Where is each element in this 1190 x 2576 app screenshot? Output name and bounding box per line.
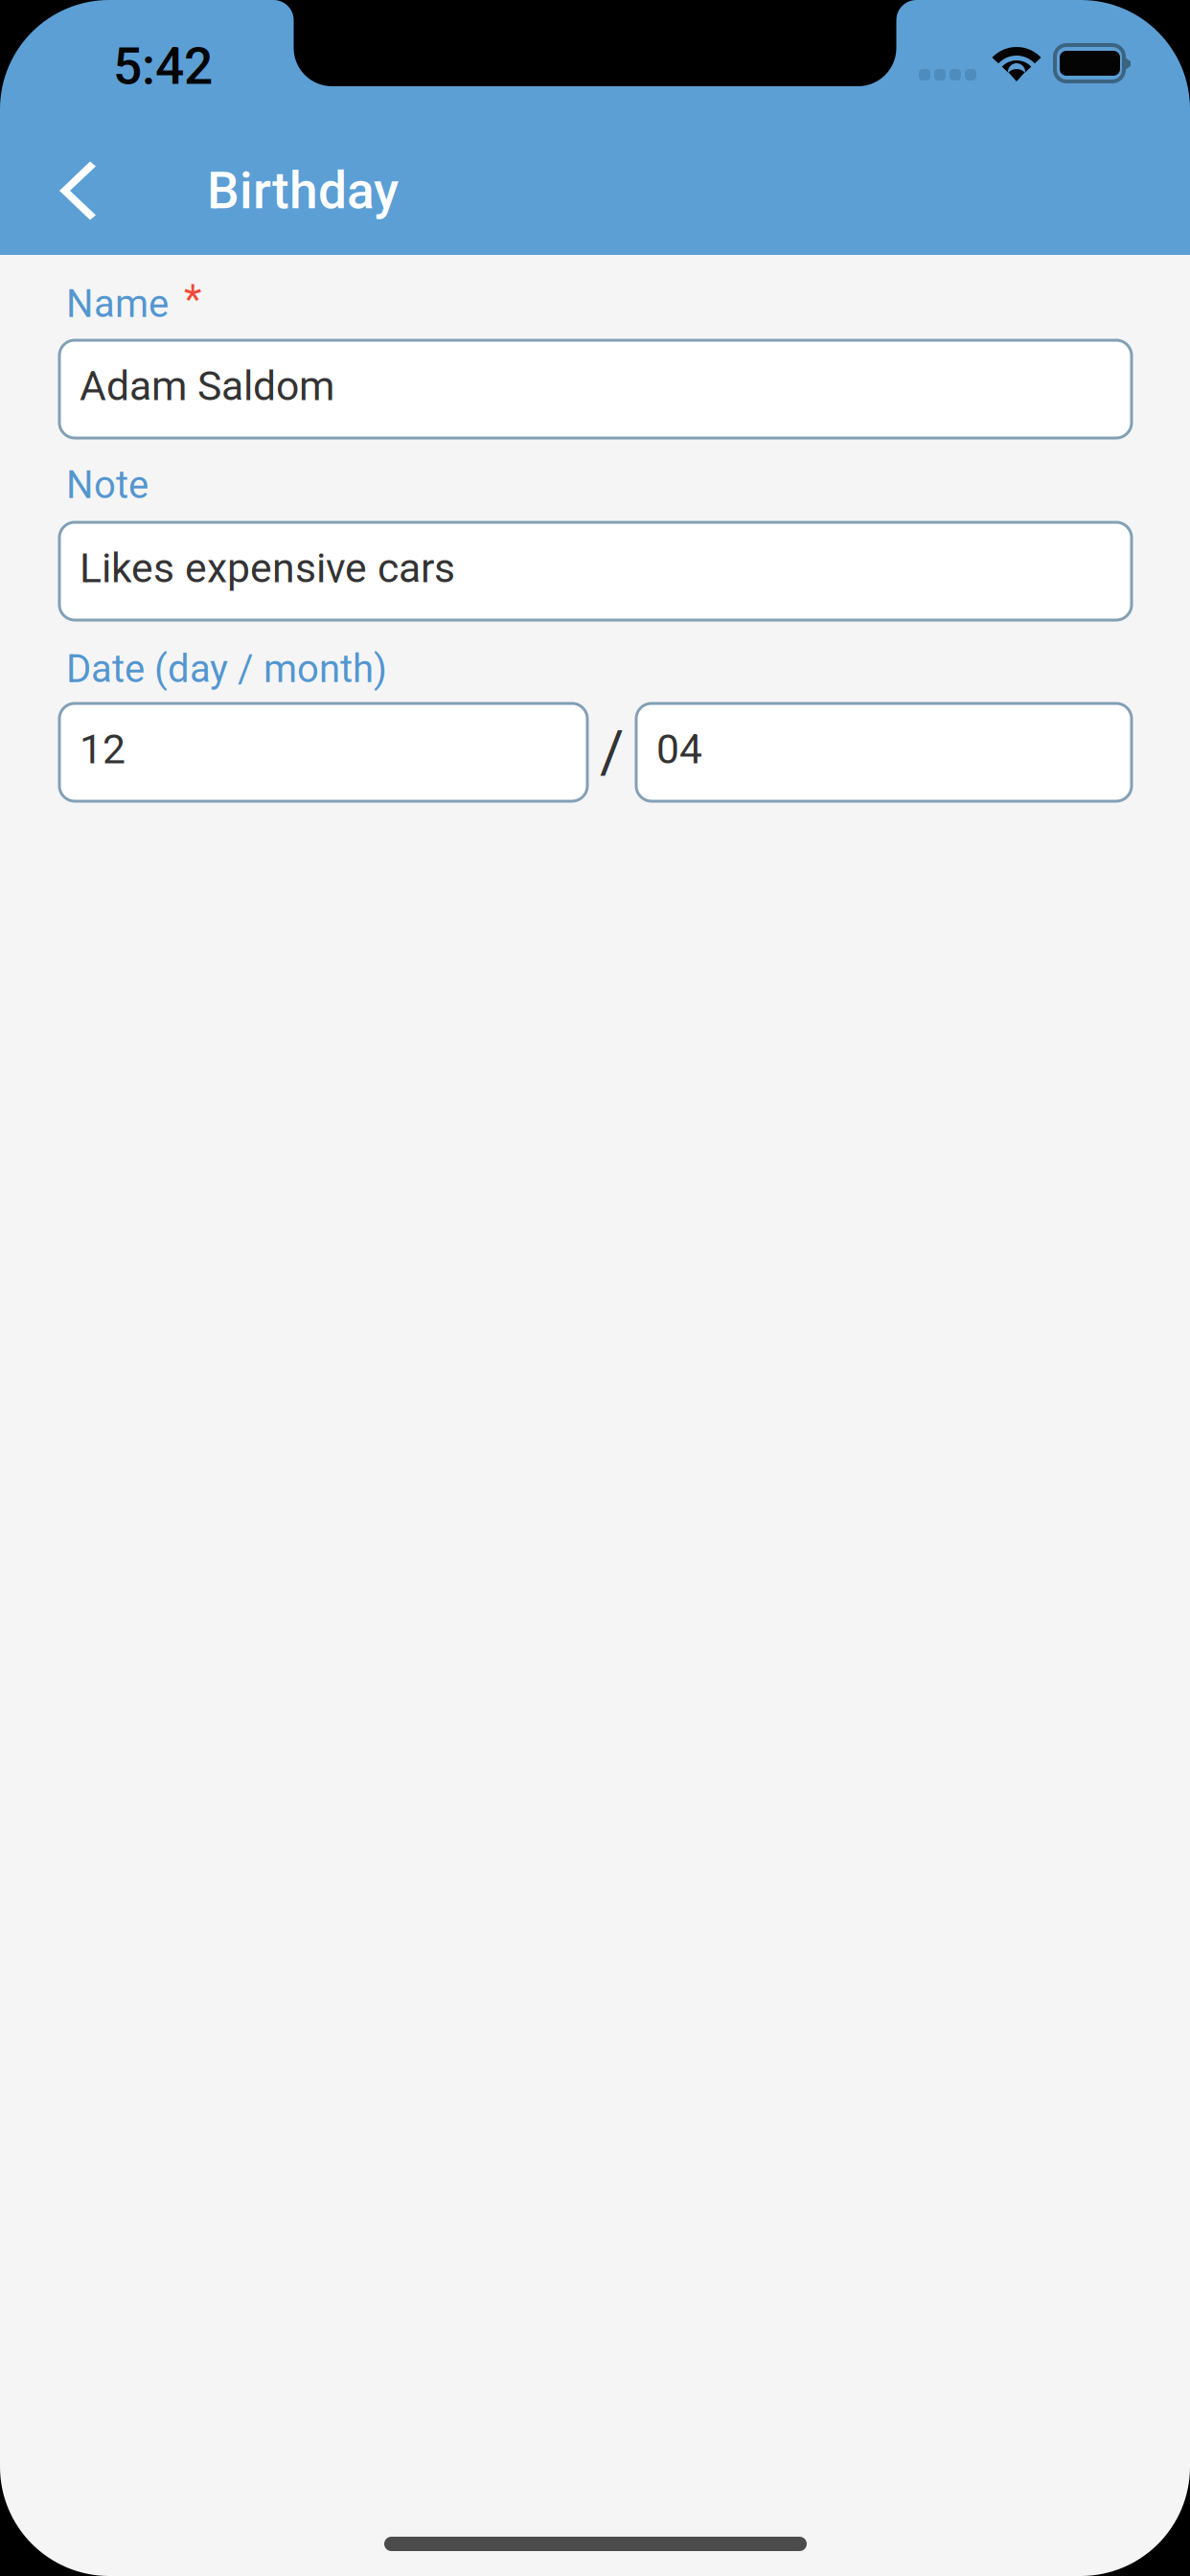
button[interactable]: 12 bbox=[59, 703, 587, 801]
button[interactable]: Likes expensive cars bbox=[59, 522, 1132, 620]
button[interactable]: Adam Saldom bbox=[59, 340, 1132, 438]
staticText: Date (day / month) bbox=[66, 646, 387, 691]
staticText: Note bbox=[66, 462, 149, 507]
staticText: Name bbox=[66, 281, 169, 326]
staticText: / bbox=[600, 718, 624, 787]
staticText: 04 bbox=[656, 725, 702, 773]
button[interactable]: Back bbox=[0, 126, 130, 255]
button[interactable]: 04 bbox=[636, 703, 1132, 801]
staticText: * bbox=[184, 275, 201, 323]
staticText: 5:42 bbox=[113, 36, 213, 96]
staticText: Likes expensive cars bbox=[80, 544, 455, 592]
staticText: Adam Saldom bbox=[80, 362, 334, 410]
staticText: 12 bbox=[80, 725, 126, 773]
staticText: Birthday bbox=[207, 161, 399, 221]
